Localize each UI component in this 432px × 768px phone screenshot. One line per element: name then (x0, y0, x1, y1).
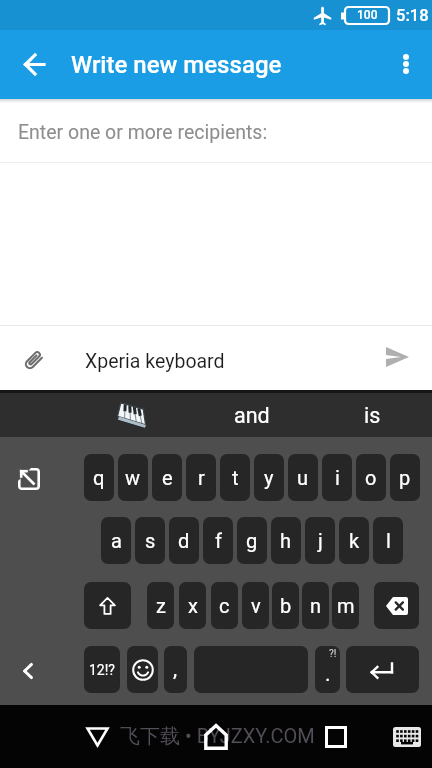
staticText: v (251, 594, 261, 617)
button[interactable] (373, 333, 421, 381)
staticText: n (310, 594, 322, 617)
staticText: h (280, 529, 292, 552)
staticText: r (198, 466, 205, 489)
staticText: p (399, 466, 411, 489)
staticText: b (280, 594, 292, 617)
button[interactable] (385, 715, 429, 759)
button[interactable] (374, 582, 419, 629)
button[interactable]: d (169, 517, 199, 564)
button[interactable]: g (237, 517, 267, 564)
button[interactable] (90, 393, 198, 437)
staticText: f (215, 529, 222, 552)
staticText: d (178, 529, 190, 552)
staticText: . (325, 662, 331, 687)
button[interactable]: l (373, 517, 403, 564)
staticText: a (111, 529, 122, 552)
button[interactable] (194, 646, 308, 693)
button[interactable] (6, 456, 52, 502)
button[interactable] (192, 713, 240, 761)
button[interactable]: u (288, 454, 318, 501)
button[interactable]: b (272, 582, 299, 629)
staticText: w (125, 466, 141, 489)
button[interactable]: j (305, 517, 335, 564)
staticText: k (349, 529, 360, 552)
button[interactable] (84, 582, 131, 629)
button[interactable]: i (322, 454, 352, 501)
button[interactable]: w (118, 454, 148, 501)
button[interactable]: e (152, 454, 182, 501)
staticText: z (156, 594, 166, 617)
button[interactable]: f (203, 517, 233, 564)
staticText: c (219, 594, 230, 617)
button[interactable] (5, 648, 51, 694)
button[interactable]: a (101, 517, 131, 564)
staticText: , (173, 657, 178, 682)
staticText: 12!? (89, 662, 115, 678)
staticText: y (264, 466, 274, 489)
staticText: ?! (329, 648, 337, 660)
button[interactable]: , (164, 646, 187, 693)
staticText: i (335, 466, 340, 489)
staticText: 100 (357, 8, 378, 22)
button[interactable]: h (271, 517, 301, 564)
staticText: q (93, 466, 105, 489)
staticText: e (162, 466, 173, 489)
button[interactable]: n (302, 582, 329, 629)
button[interactable] (73, 713, 121, 761)
button[interactable] (127, 646, 158, 693)
button[interactable]: k (339, 517, 369, 564)
staticText: o (365, 466, 377, 489)
button[interactable]: p (390, 454, 420, 501)
button[interactable]: q (84, 454, 114, 501)
button[interactable]: m (332, 582, 359, 629)
button[interactable] (346, 646, 419, 693)
button[interactable]: v (242, 582, 269, 629)
button[interactable]: r (186, 454, 216, 501)
staticText: Xperia keyboard (85, 350, 225, 373)
button[interactable]: t (220, 454, 250, 501)
button[interactable] (312, 713, 360, 761)
button[interactable]: is (318, 393, 426, 437)
button[interactable]: ?! (315, 646, 340, 693)
staticText: Enter one or more recipients: (18, 121, 268, 144)
button[interactable] (384, 40, 428, 88)
staticText: t (232, 466, 239, 489)
button[interactable]: Enter one or more recipients: (0, 99, 432, 163)
button[interactable]: z (147, 582, 174, 629)
staticText: x (188, 594, 198, 617)
staticText: j (318, 529, 323, 552)
button[interactable] (9, 336, 57, 384)
button[interactable]: y (254, 454, 284, 501)
button[interactable]: o (356, 454, 386, 501)
button[interactable]: x (179, 582, 206, 629)
staticText: u (297, 466, 309, 489)
staticText: 5:18 (396, 6, 429, 25)
staticText: m (337, 594, 355, 617)
button[interactable]: 12!? (84, 646, 120, 693)
staticText: 飞下载 • BYJZXY.COM (120, 724, 315, 749)
staticText: and (234, 403, 270, 428)
staticText: g (246, 529, 258, 552)
staticText: is (364, 403, 381, 428)
button[interactable]: c (211, 582, 238, 629)
staticText: s (145, 529, 156, 552)
button[interactable]: and (198, 393, 305, 437)
button[interactable] (10, 40, 58, 88)
staticText: Write new message (71, 51, 282, 79)
button[interactable]: s (135, 517, 165, 564)
staticText: l (386, 529, 391, 552)
